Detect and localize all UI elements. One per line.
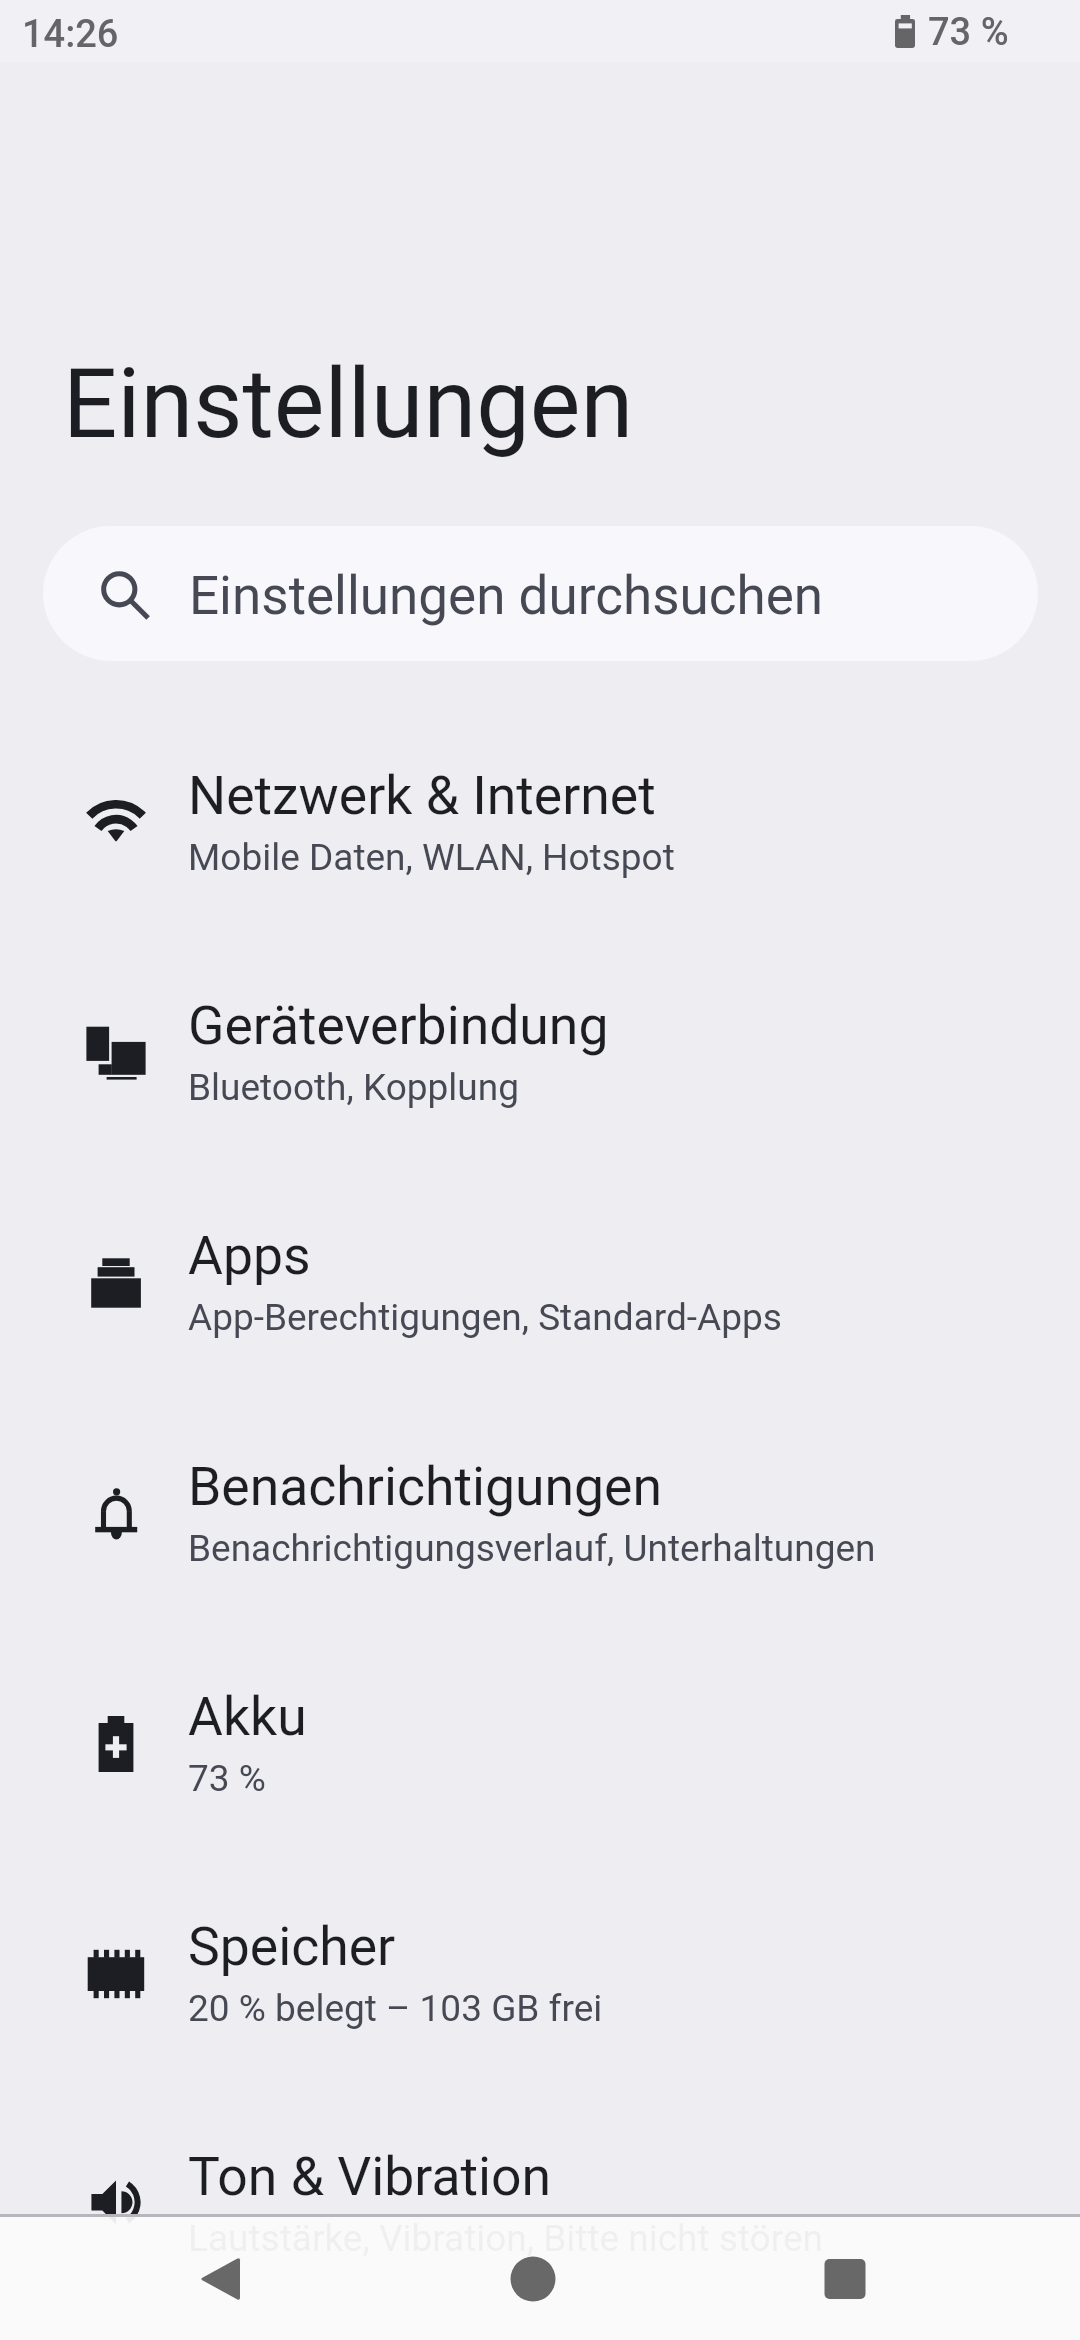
staticText: Apps <box>188 1224 311 1287</box>
staticText: Einstellungen durchsuchen <box>189 565 824 627</box>
staticText: 14:26 <box>22 12 119 57</box>
staticText: Bluetooth, Kopplung <box>188 1066 519 1109</box>
button[interactable]: Akku <box>0 1627 1080 1857</box>
button[interactable]: Benachrichtigungen <box>0 1397 1080 1627</box>
button[interactable]: Einstellungen durchsuchen <box>43 526 1038 661</box>
staticText: Einstellungen <box>63 348 634 460</box>
staticText: Benachrichtigungsverlauf, Unterhaltungen <box>188 1527 876 1570</box>
button[interactable]: Home <box>473 2217 593 2340</box>
staticText: Lautstärke, Vibration, Bitte nicht störe… <box>188 2217 823 2260</box>
staticText: App-Berechtigungen, Standard-Apps <box>188 1296 782 1339</box>
staticText: Geräteverbindung <box>188 994 609 1057</box>
button[interactable]: Apps <box>0 1166 1080 1396</box>
button[interactable]: Speicher <box>0 1857 1080 2087</box>
button[interactable]: Netzwerk & Internet <box>0 706 1080 936</box>
button[interactable]: Back <box>160 2217 280 2340</box>
staticText: Benachrichtigungen <box>188 1455 662 1518</box>
staticText: Netzwerk & Internet <box>188 764 656 827</box>
button[interactable]: Recent apps <box>785 2217 905 2340</box>
staticText: Mobile Daten, WLAN, Hotspot <box>188 836 675 879</box>
staticText: 73 % <box>928 10 1009 55</box>
button[interactable]: Ton & Vibration <box>0 2087 1080 2317</box>
button[interactable]: Geräteverbindung <box>0 936 1080 1166</box>
staticText: 73 % <box>188 1757 266 1800</box>
staticText: Speicher <box>188 1915 396 1978</box>
staticText: Akku <box>188 1685 307 1748</box>
staticText: Ton & Vibration <box>188 2145 552 2208</box>
staticText: 20 % belegt – 103 GB frei <box>188 1987 603 2030</box>
